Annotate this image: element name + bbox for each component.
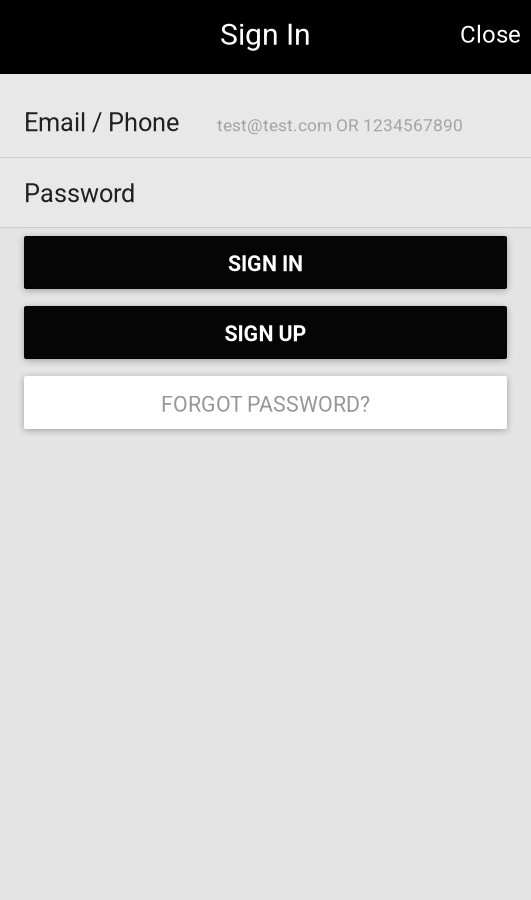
- staticText: Close: [460, 20, 521, 48]
- staticText: SIGN UP: [224, 321, 306, 346]
- staticText: FORGOT PASSWORD?: [161, 392, 370, 417]
- button[interactable]: Email / Phone: [0, 74, 531, 157]
- staticText: SIGN IN: [228, 251, 303, 276]
- button[interactable]: SIGN UP: [24, 306, 507, 359]
- button[interactable]: SIGN IN: [24, 236, 507, 289]
- staticText: test@test.com OR 1234567890: [217, 115, 463, 135]
- staticText: Password: [24, 179, 135, 208]
- staticText: Email / Phone: [24, 108, 179, 137]
- button[interactable]: FORGOT PASSWORD?: [24, 376, 507, 429]
- button[interactable]: Password: [0, 158, 531, 227]
- button[interactable]: Close: [442, 0, 531, 74]
- staticText: Sign In: [220, 17, 311, 52]
